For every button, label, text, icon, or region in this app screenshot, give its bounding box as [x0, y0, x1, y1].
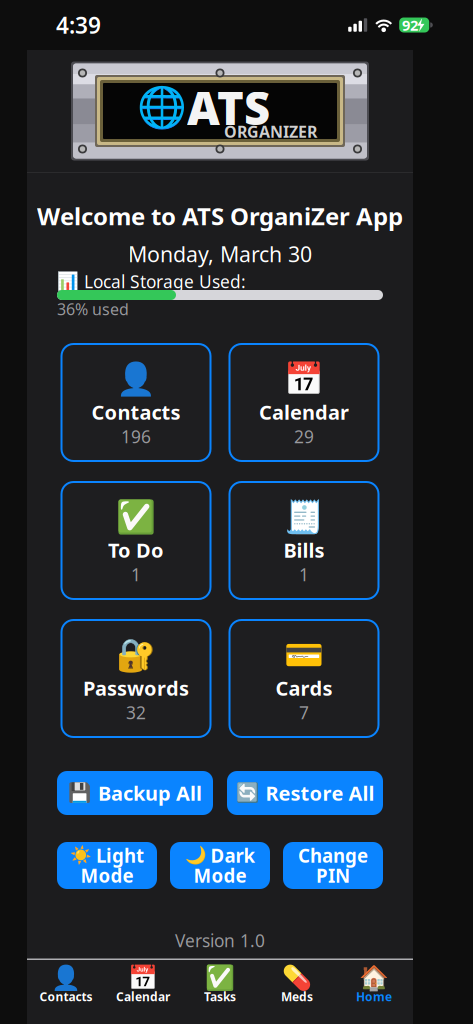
staticText: 👤	[116, 361, 156, 397]
staticText: 🌙	[184, 846, 206, 865]
button[interactable]: 🧾	[229, 482, 378, 599]
staticText: 1	[131, 563, 141, 586]
staticText: 📅	[128, 964, 158, 992]
staticText: 36% used	[57, 298, 129, 320]
staticText: Bills	[283, 537, 324, 563]
staticText: Cards	[275, 675, 332, 701]
button[interactable]: Change	[283, 842, 383, 889]
button[interactable]: 🔄	[227, 771, 383, 815]
staticText: 196	[121, 425, 151, 448]
staticText: Version 1.0	[175, 929, 265, 952]
staticText: Welcome to ATS OrganiZer App	[37, 200, 403, 232]
staticText: Contacts	[39, 988, 92, 1004]
button[interactable]: 🌙	[170, 842, 270, 889]
staticText: Contacts	[91, 399, 180, 425]
staticText: ✅	[205, 964, 235, 992]
staticText: 🏠	[359, 964, 389, 992]
staticText: 1	[299, 563, 309, 586]
button[interactable]: 💾	[57, 771, 213, 815]
button[interactable]: ✅	[181, 965, 258, 1005]
button[interactable]: 💳	[229, 620, 378, 737]
staticText: 32	[126, 701, 146, 724]
staticText: 📅	[284, 361, 324, 397]
staticText: 7	[299, 701, 309, 724]
staticText: 🔄	[235, 782, 258, 804]
staticText: Dark	[210, 843, 255, 868]
staticText: 💳	[284, 637, 324, 673]
button[interactable]: 💊	[258, 965, 335, 1005]
button[interactable]: ☀️	[57, 842, 157, 889]
staticText: Calendar	[259, 399, 349, 425]
staticText: 🧾	[284, 499, 324, 535]
staticText: ✅	[116, 499, 156, 535]
button[interactable]: ✅	[61, 482, 210, 599]
button[interactable]: 📅	[229, 344, 378, 461]
staticText: ATS	[187, 77, 270, 138]
button[interactable]: 📅	[104, 965, 181, 1005]
staticText: Calendar	[116, 988, 170, 1004]
staticText: 92	[402, 15, 418, 35]
button[interactable]: 🏠	[335, 965, 412, 1005]
staticText: Restore All	[265, 780, 374, 806]
staticText: Tasks	[204, 988, 236, 1004]
staticText: 🌐	[137, 85, 187, 130]
staticText: 🔐	[116, 637, 156, 673]
staticText: 📊	[57, 272, 79, 291]
staticText: To Do	[108, 537, 164, 563]
staticText: Backup All	[98, 780, 202, 806]
staticText: PIN	[316, 863, 350, 888]
staticText: 29	[294, 425, 314, 448]
staticText: 💊	[282, 964, 312, 992]
staticText: Light	[96, 843, 144, 868]
button[interactable]: 👤	[27, 965, 104, 1005]
staticText: ORGANIZER	[224, 121, 317, 142]
staticText: Passwords	[83, 675, 189, 701]
staticText: ☀️	[70, 846, 92, 865]
staticText: Local Storage Used:	[84, 270, 246, 293]
staticText: 💾	[68, 782, 91, 804]
staticText: 4:39	[56, 10, 101, 40]
button[interactable]: 🔐	[61, 620, 210, 737]
staticText: Mode	[80, 863, 133, 888]
staticText: Meds	[281, 988, 313, 1004]
staticText: Change	[298, 843, 368, 868]
staticText: 👤	[51, 964, 81, 992]
staticText: Mode	[193, 863, 246, 888]
staticText: Monday, March 30	[128, 240, 312, 268]
button[interactable]: 👤	[61, 344, 210, 461]
staticText: Home	[356, 988, 392, 1004]
